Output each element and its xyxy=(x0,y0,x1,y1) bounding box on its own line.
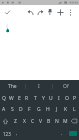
button[interactable]: A xyxy=(0,104,8,115)
button[interactable]: I xyxy=(55,93,63,104)
staticText: P xyxy=(73,95,77,102)
button[interactable]: G xyxy=(34,104,43,115)
staticText: Y xyxy=(42,95,45,102)
button[interactable]: Enter xyxy=(69,131,77,136)
button[interactable]: J xyxy=(52,104,61,115)
staticText: W xyxy=(9,95,14,102)
staticText: K xyxy=(64,106,68,113)
staticText: M xyxy=(63,118,68,125)
staticText: I xyxy=(58,95,60,102)
button[interactable]: M xyxy=(61,115,69,127)
button[interactable]: F xyxy=(25,104,34,115)
staticText: I xyxy=(38,83,40,90)
button[interactable]: K xyxy=(61,104,70,115)
button[interactable]: B xyxy=(45,115,53,127)
button[interactable]: Q xyxy=(0,93,7,104)
staticText: D xyxy=(19,106,23,113)
staticText: X xyxy=(23,118,26,125)
staticText: , xyxy=(16,130,18,137)
button[interactable]: More options xyxy=(65,5,75,19)
button[interactable]: E xyxy=(15,93,23,104)
button[interactable]: 123 xyxy=(0,127,13,140)
button[interactable]: Shift xyxy=(0,115,11,127)
staticText: G xyxy=(37,106,41,113)
button[interactable]: Y xyxy=(39,93,47,104)
button[interactable]: Z xyxy=(11,115,20,127)
button[interactable]: L xyxy=(70,104,79,115)
button[interactable]: V xyxy=(37,115,45,127)
button[interactable]: Add xyxy=(55,5,65,19)
button[interactable]: X xyxy=(20,115,29,127)
staticText: The xyxy=(8,83,17,90)
button[interactable]: N xyxy=(53,115,61,127)
button[interactable]: C xyxy=(29,115,37,127)
button[interactable]: I xyxy=(26,80,52,93)
staticText: Z xyxy=(14,118,17,125)
staticText: F xyxy=(28,106,31,113)
button[interactable]: U xyxy=(47,93,55,104)
button[interactable]: S xyxy=(8,104,16,115)
button[interactable]: Backspace xyxy=(69,115,79,127)
button[interactable]: W xyxy=(7,93,15,104)
staticText: J xyxy=(56,106,58,113)
staticText: N xyxy=(55,118,59,125)
button[interactable]: R xyxy=(23,93,31,104)
staticText: V xyxy=(39,118,43,125)
staticText: S xyxy=(11,106,14,113)
button[interactable]: Comma xyxy=(13,127,21,140)
staticText: Q xyxy=(2,95,6,102)
staticText: Of xyxy=(63,83,69,90)
button[interactable]: Pin note xyxy=(45,5,55,19)
button[interactable]: P xyxy=(71,93,79,104)
button[interactable]: O xyxy=(63,93,71,104)
button[interactable]: Period xyxy=(58,127,66,140)
staticText: R xyxy=(25,95,29,102)
button[interactable]: Back xyxy=(2,5,12,19)
button[interactable]: Redo xyxy=(35,5,45,19)
staticText: 123 xyxy=(3,131,11,137)
button[interactable]: H xyxy=(43,104,52,115)
button[interactable]: Undo xyxy=(25,5,35,19)
button[interactable]: D xyxy=(16,104,25,115)
button[interactable]: T xyxy=(31,93,39,104)
staticText: H xyxy=(46,106,50,113)
staticText: B xyxy=(47,118,51,125)
button[interactable]: Of xyxy=(53,80,79,93)
staticText: . xyxy=(61,130,63,137)
staticText: E xyxy=(18,95,21,102)
staticText: T xyxy=(34,95,37,102)
staticText: U xyxy=(49,95,53,102)
staticText: A xyxy=(2,106,6,113)
staticText: C xyxy=(31,118,35,125)
staticText: L xyxy=(73,106,76,113)
staticText: O xyxy=(65,95,69,102)
button[interactable]: The xyxy=(0,80,25,93)
